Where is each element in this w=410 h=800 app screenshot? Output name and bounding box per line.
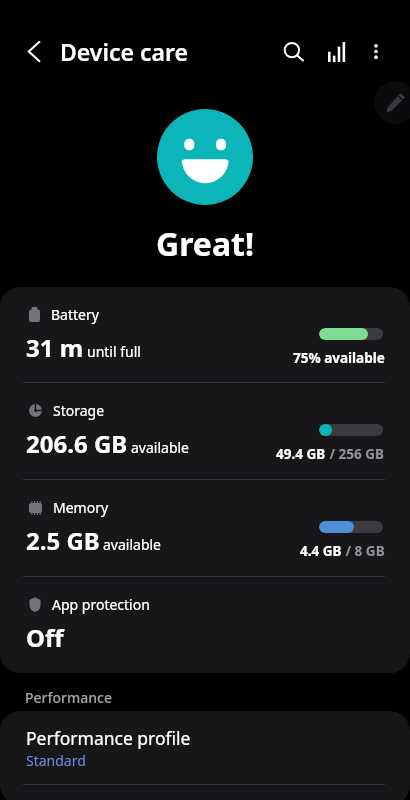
button[interactable]: Battery (0, 287, 410, 382)
staticText: Battery (51, 305, 99, 324)
button[interactable]: Storage (0, 383, 410, 479)
staticText: 49.4 GB (276, 445, 326, 463)
staticText: until full (87, 342, 141, 361)
staticText: available (103, 535, 162, 554)
staticText: Device care (60, 36, 188, 67)
staticText: 75% available (293, 349, 385, 367)
staticText: App protection (52, 595, 150, 614)
staticText: 206.6 GB (26, 427, 128, 460)
staticText: Performance profile (26, 726, 191, 750)
staticText: / 8 GB (342, 542, 385, 560)
staticText: 2.5 GB (26, 524, 100, 557)
staticText: Memory (53, 498, 109, 517)
button[interactable]: App protection (0, 577, 410, 673)
button[interactable]: Back (12, 29, 56, 73)
staticText: available (131, 438, 190, 457)
button[interactable]: Edit (374, 81, 410, 124)
button[interactable]: More options (354, 29, 398, 73)
staticText: Off (26, 621, 64, 654)
staticText: Standard (26, 751, 86, 770)
button[interactable]: Search (272, 30, 316, 74)
staticText: 31 m (26, 331, 84, 364)
staticText: Storage (53, 401, 105, 420)
staticText: Great! (156, 222, 255, 266)
staticText: Performance (25, 688, 112, 707)
button[interactable]: Usage statistics (314, 30, 358, 74)
staticText: / 256 GB (326, 445, 385, 463)
button[interactable]: Memory (0, 480, 410, 576)
button[interactable]: Performance profile (0, 711, 410, 784)
staticText: 4.4 GB (300, 542, 342, 560)
